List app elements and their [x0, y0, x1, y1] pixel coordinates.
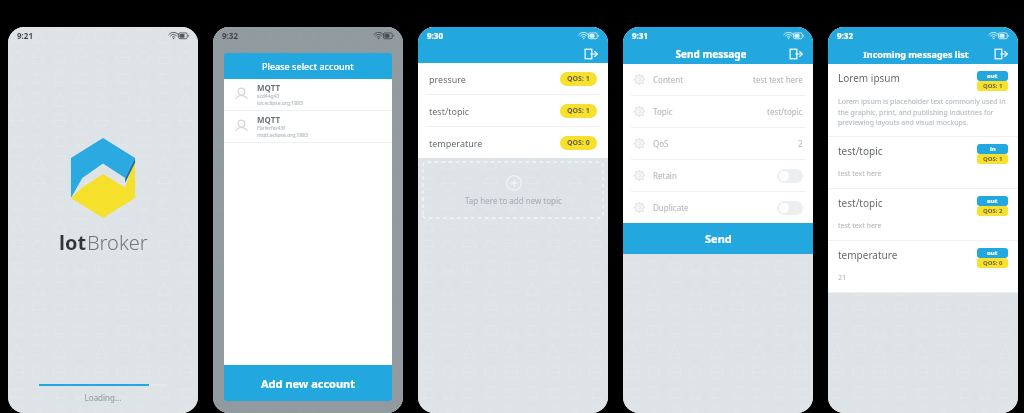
- button[interactable]: QoS: [623, 128, 813, 159]
- staticText: test/topic: [838, 144, 977, 158]
- other: Log out: [789, 47, 803, 61]
- staticText: temperature: [429, 137, 483, 149]
- staticText: test text here: [838, 169, 882, 179]
- button[interactable]: Retain: [623, 160, 813, 191]
- staticText: 9:32: [222, 30, 238, 41]
- staticText: 9:30: [427, 30, 443, 41]
- staticText: scd44g43: [257, 93, 280, 100]
- staticText: QOS: 1: [567, 74, 590, 84]
- staticText: temperature: [838, 248, 977, 262]
- button[interactable]: Please select account: [224, 53, 392, 79]
- staticText: pressure: [429, 73, 466, 85]
- staticText: 9:32: [837, 30, 853, 41]
- button[interactable]: test/topic: [828, 189, 1018, 240]
- staticText: Content: [653, 74, 684, 85]
- staticText: Lorem ipsum: [838, 71, 977, 85]
- button[interactable]: Send: [623, 223, 813, 254]
- button[interactable]: Log out: [994, 47, 1008, 61]
- button[interactable]: MQTT: [224, 111, 392, 142]
- other: Log out: [584, 47, 598, 61]
- staticText: test/topic: [767, 106, 803, 117]
- staticText: Loading...: [8, 392, 198, 403]
- button[interactable]: pressure: [418, 63, 608, 94]
- staticText: Send message: [633, 47, 789, 61]
- staticText: test text here: [838, 221, 882, 231]
- button[interactable]: Tap here to add new topic: [423, 162, 603, 218]
- button[interactable]: temperature: [418, 127, 608, 158]
- staticText: out: [987, 249, 998, 257]
- button[interactable]: Lorem ipsum: [828, 64, 1018, 136]
- staticText: 2: [798, 138, 803, 149]
- button[interactable]: Duplicate: [623, 192, 813, 223]
- button[interactable]: Log out: [584, 47, 598, 61]
- staticText: Retain: [653, 170, 677, 181]
- button[interactable]: Toggle: [777, 201, 803, 215]
- button[interactable]: test/topic: [828, 137, 1018, 188]
- button[interactable]: Content: [623, 64, 813, 95]
- staticText: out: [987, 72, 998, 80]
- staticText: 9:31: [632, 30, 648, 41]
- staticText: out: [987, 197, 998, 205]
- button[interactable]: Toggle: [777, 169, 803, 183]
- staticText: QOS: 1: [983, 82, 1003, 90]
- staticText: iot.eclipse.org:1883: [257, 100, 303, 107]
- staticText: Duplicate: [653, 202, 689, 213]
- button[interactable]: Add new account: [224, 365, 392, 401]
- staticText: 9:21: [17, 30, 33, 41]
- staticText: Topic: [653, 106, 673, 117]
- staticText: QoS: [653, 138, 669, 149]
- button[interactable]: Log out: [789, 47, 803, 61]
- staticText: MQTT: [257, 114, 281, 125]
- staticText: Please select account: [262, 60, 354, 72]
- staticText: Broker: [87, 229, 148, 256]
- button[interactable]: Topic: [623, 96, 813, 127]
- staticText: lot: [59, 229, 87, 256]
- staticText: MQTT: [257, 82, 281, 93]
- staticText: test/topic: [838, 196, 977, 210]
- staticText: Lorem ipsum is placeholder text commonly…: [838, 97, 1008, 127]
- staticText: f3eferfer43f: [257, 125, 286, 132]
- staticText: Send: [705, 231, 732, 246]
- button[interactable]: MQTT: [224, 79, 392, 110]
- staticText: Tap here to add new topic: [465, 195, 562, 206]
- staticText: QOS: 1: [567, 106, 590, 116]
- staticText: in: [990, 145, 996, 153]
- staticText: test text here: [753, 74, 803, 85]
- staticText: 21: [838, 273, 847, 283]
- staticText: QOS: 0: [567, 138, 590, 148]
- staticText: Add new account: [261, 376, 356, 391]
- staticText: QOS: 1: [983, 155, 1003, 163]
- staticText: test/topic: [429, 105, 470, 117]
- staticText: QOS: 2: [983, 207, 1003, 215]
- staticText: QOS: 0: [983, 259, 1003, 267]
- staticText: Incoming messages list: [838, 48, 994, 60]
- button[interactable]: temperature: [828, 241, 1018, 292]
- staticText: mqtt.eclipse.org:1883: [257, 132, 309, 139]
- button[interactable]: test/topic: [418, 95, 608, 126]
- other: Log out: [994, 47, 1008, 61]
